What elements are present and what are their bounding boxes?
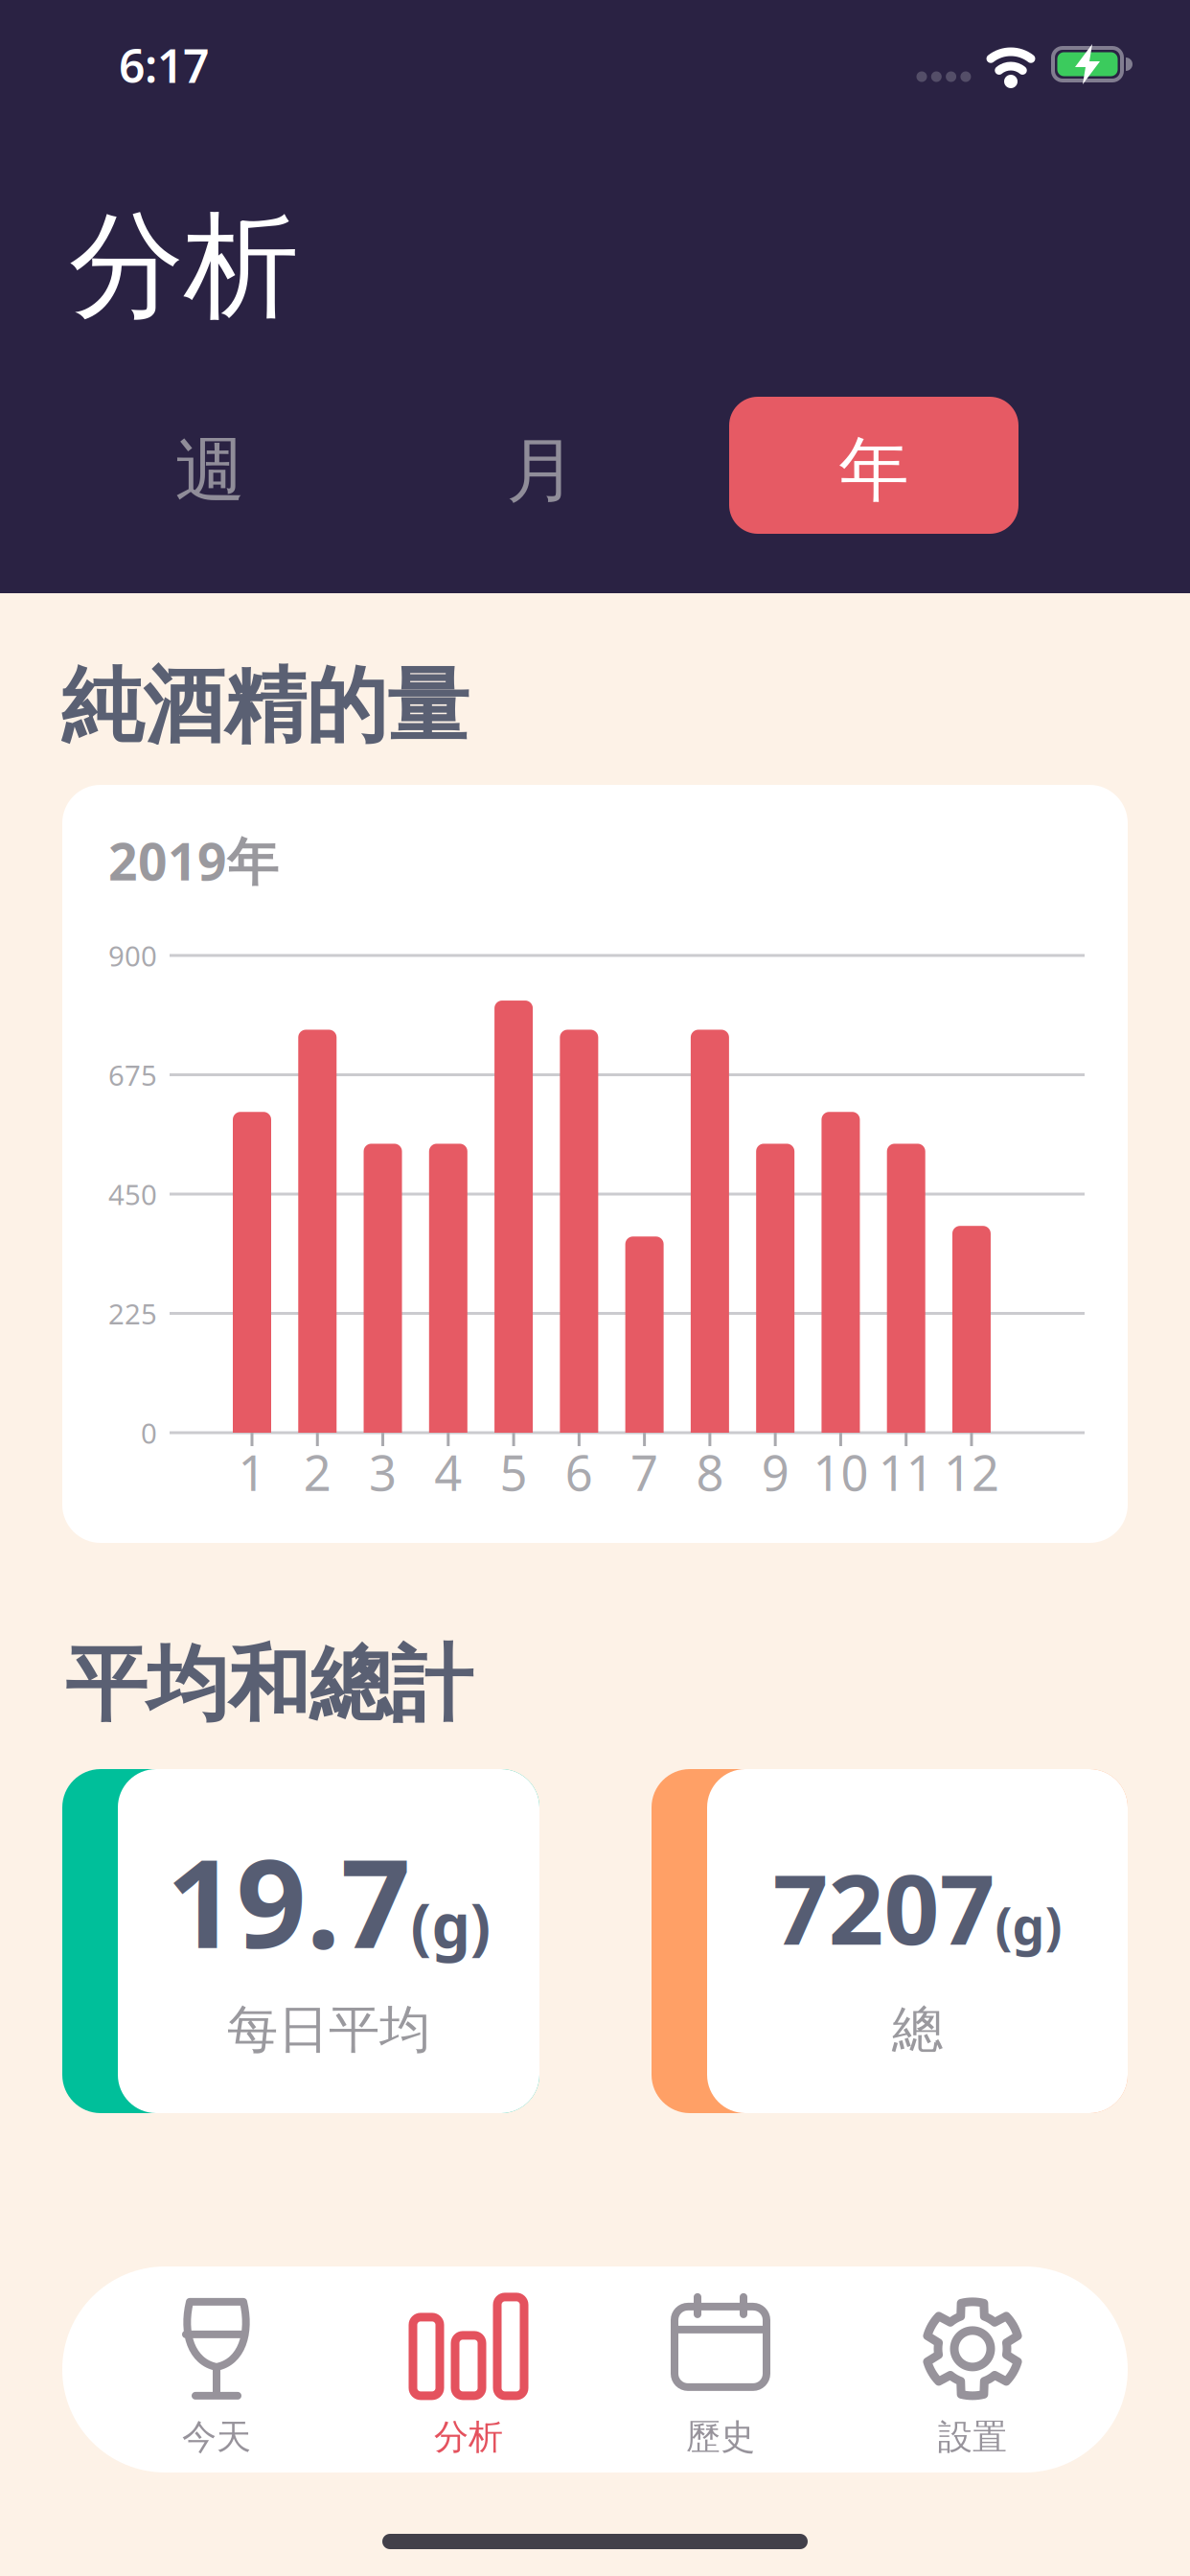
staticText: 歷史: [686, 2416, 755, 2458]
staticText: 0: [141, 1414, 157, 1451]
staticText: 6:17: [119, 35, 209, 96]
staticText: 900: [108, 937, 157, 974]
staticText: 2019年: [108, 827, 278, 895]
staticText: 2: [304, 1440, 331, 1504]
button[interactable]: 設置: [848, 2280, 1097, 2472]
staticText: 分析: [69, 196, 299, 337]
button[interactable]: 歷史: [596, 2280, 845, 2472]
staticText: 每日平均: [227, 1998, 430, 2061]
staticText: 1: [238, 1440, 266, 1504]
staticText: 純酒精的量: [61, 656, 469, 757]
staticText: 6: [565, 1440, 593, 1504]
staticText: 10: [813, 1440, 868, 1504]
staticText: 7: [631, 1440, 658, 1504]
staticText: 今天: [182, 2416, 251, 2458]
staticText: 3: [369, 1440, 397, 1504]
staticText: 12: [944, 1440, 999, 1504]
staticText: 5: [500, 1440, 528, 1504]
staticText: 19.7(g): [166, 1819, 491, 1982]
staticText: 總: [892, 1998, 943, 2061]
button[interactable]: 週: [44, 402, 376, 539]
staticText: 8: [696, 1440, 724, 1504]
staticText: 年: [839, 427, 909, 513]
button[interactable]: 今天: [92, 2280, 341, 2472]
staticText: 7207(g): [773, 1843, 1062, 1972]
staticText: 分析: [434, 2416, 503, 2458]
button[interactable]: 年: [729, 397, 1018, 534]
staticText: 675: [108, 1056, 157, 1093]
staticText: 平均和總計: [65, 1635, 472, 1735]
button[interactable]: 分析: [344, 2280, 593, 2472]
button[interactable]: 月: [376, 402, 707, 539]
staticText: 4: [434, 1440, 462, 1504]
staticText: 225: [108, 1295, 157, 1332]
staticText: 11: [878, 1440, 934, 1504]
staticText: 9: [761, 1440, 789, 1504]
staticText: 450: [108, 1175, 157, 1213]
staticText: 週: [175, 427, 245, 514]
staticText: 月: [506, 427, 576, 514]
staticText: 設置: [938, 2416, 1007, 2458]
